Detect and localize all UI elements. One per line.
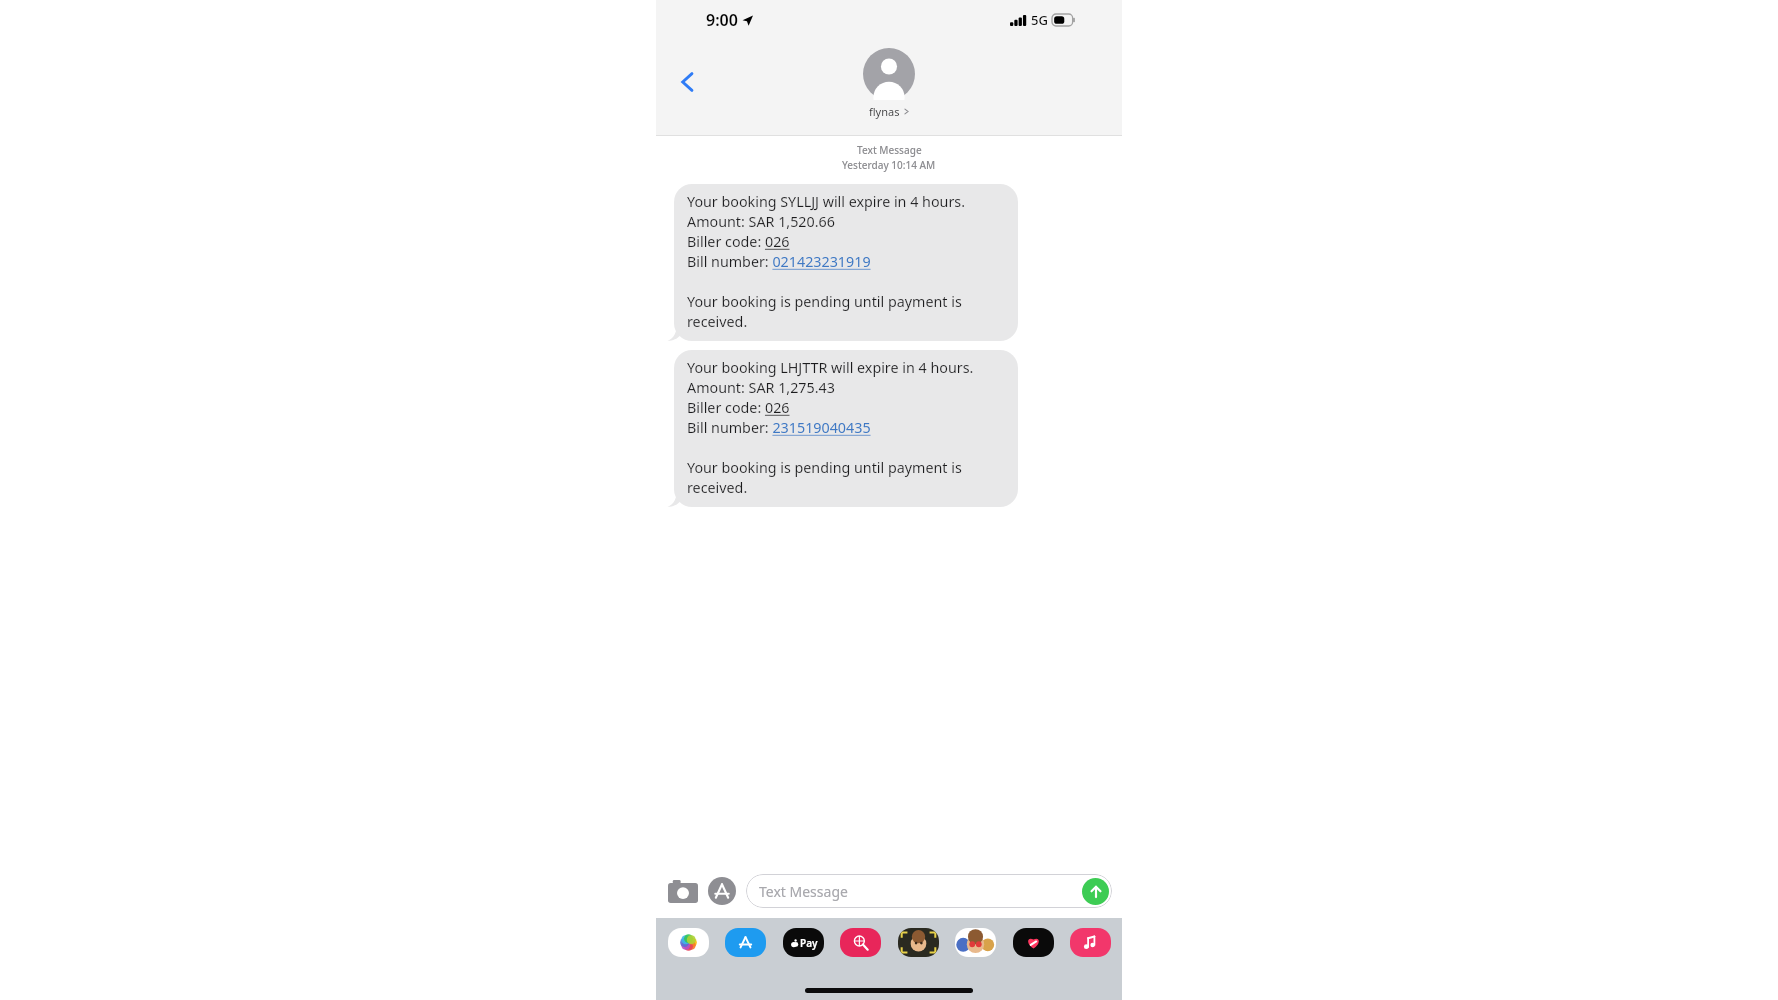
staticText: Your booking SYLLJJ will expire in 4 hou… — [687, 192, 1005, 332]
staticText: Your booking LHJTTR will expire in 4 hou… — [687, 358, 1005, 498]
button[interactable]: Stickers — [953, 926, 997, 958]
staticText: Yesterday 10:14 AM — [842, 158, 936, 172]
button[interactable]: Image Search — [838, 926, 882, 958]
button[interactable]: flynas — [863, 48, 915, 119]
button[interactable]: Your booking LHJTTR will expire in 4 hou… — [674, 350, 1018, 507]
button[interactable]: Apps — [707, 876, 737, 906]
button[interactable]: Apple Pay — [781, 926, 825, 958]
button[interactable]: App Store — [723, 926, 767, 958]
button[interactable]: Camera — [666, 874, 700, 908]
staticText: 9:00 — [706, 9, 738, 31]
button[interactable]: Your booking SYLLJJ will expire in 4 hou… — [674, 184, 1018, 341]
button[interactable]: Photos — [666, 926, 710, 958]
button[interactable]: Back — [666, 60, 710, 104]
button[interactable]: Music — [1068, 926, 1112, 958]
staticText: 5G — [1031, 11, 1048, 29]
staticText: Text Message — [857, 143, 922, 157]
button[interactable]: Send — [1082, 878, 1109, 905]
button[interactable]: Memoji — [896, 926, 940, 958]
button[interactable]: Fitness — [1011, 926, 1055, 958]
staticText: Pay — [800, 936, 818, 950]
staticText: flynas — [869, 104, 900, 119]
staticText: Text Message — [759, 882, 848, 901]
button[interactable]: Text Message — [746, 874, 1112, 908]
